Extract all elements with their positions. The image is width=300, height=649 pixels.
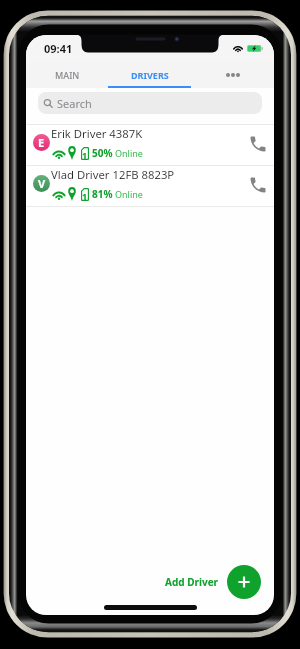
button[interactable]: More options (191, 62, 274, 88)
button[interactable]: E (26, 125, 274, 165)
staticText: MAIN (55, 69, 80, 81)
button[interactable]: MAIN (26, 62, 108, 88)
staticText: 1 (82, 149, 88, 161)
staticText: Online (115, 147, 143, 159)
staticText: DRIVERS (131, 69, 169, 81)
staticText: Vlad Driver 12FB 8823P (51, 167, 175, 182)
staticText: V (38, 176, 46, 191)
staticText: 50% (92, 146, 113, 160)
staticText: Search (57, 96, 92, 111)
staticText: Add Driver (165, 575, 219, 589)
staticText: E (38, 135, 45, 150)
button[interactable]: V (26, 166, 274, 206)
button[interactable]: DRIVERS (108, 62, 191, 88)
button[interactable]: Call (238, 125, 274, 165)
staticText: Online (115, 188, 143, 200)
staticText: Erik Driver 4387K (51, 126, 143, 141)
staticText: 1 (82, 190, 88, 202)
button[interactable]: Add driver (227, 565, 261, 599)
staticText: 09:41 (44, 41, 73, 56)
button[interactable]: Add Driver (161, 569, 223, 595)
button[interactable]: Search (38, 92, 262, 114)
staticText: 81% (92, 187, 113, 201)
button[interactable]: Call (238, 166, 274, 206)
